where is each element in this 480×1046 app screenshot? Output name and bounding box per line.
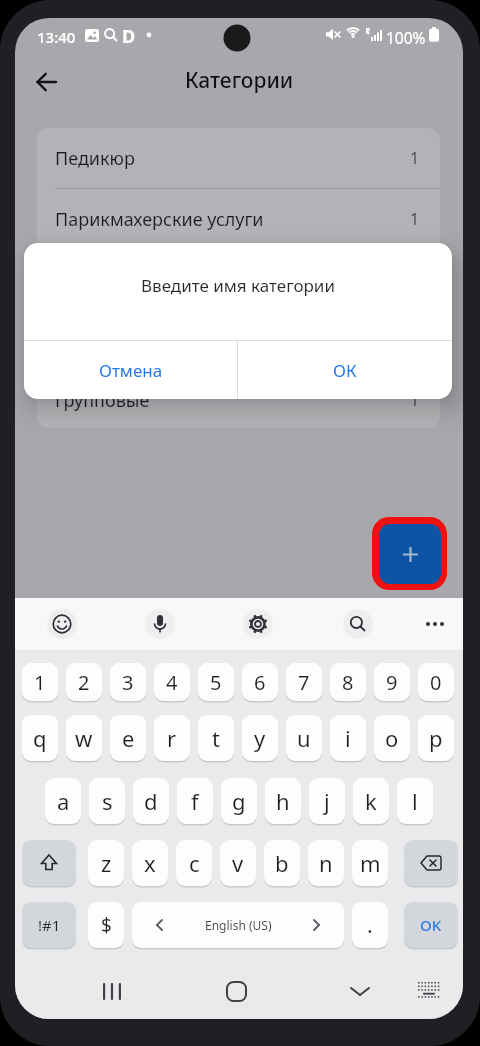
button[interactable]: 9 [374, 663, 410, 701]
button[interactable]: ОК [238, 341, 452, 399]
staticText: OK [420, 915, 442, 935]
staticText: k [365, 786, 377, 816]
button[interactable] [343, 609, 373, 639]
button[interactable]: !#1 [22, 902, 76, 948]
button[interactable]: v [220, 840, 256, 886]
button[interactable]: 5 [198, 663, 234, 701]
button[interactable]: . [352, 902, 388, 948]
button[interactable] [27, 62, 67, 102]
staticText: t [212, 723, 220, 753]
button[interactable]: n [308, 840, 344, 886]
staticText: Введите имя категории [141, 274, 335, 297]
staticText: 7 [298, 669, 310, 696]
staticText: 1 [410, 330, 420, 352]
staticText: v [232, 848, 244, 878]
staticText: $ [101, 912, 112, 938]
button[interactable]: o [374, 715, 410, 761]
staticText: y [254, 723, 266, 753]
staticText: Педикюр [55, 146, 135, 171]
staticText: q [33, 723, 47, 753]
button[interactable]: Отмена [24, 341, 237, 399]
button[interactable]: y [242, 715, 278, 761]
staticText: 0 [430, 669, 442, 696]
button[interactable]: 6 [242, 663, 278, 701]
button[interactable]: s [89, 778, 125, 824]
button[interactable]: Групповые [37, 372, 440, 428]
staticText: w [75, 723, 93, 753]
button[interactable] [47, 609, 77, 639]
staticText: s [102, 786, 113, 816]
button[interactable]: Массаж [37, 311, 440, 371]
button[interactable] [336, 967, 384, 1015]
button[interactable]: t [198, 715, 234, 761]
button[interactable] [379, 524, 441, 584]
staticText: l [412, 786, 418, 816]
staticText: o [385, 723, 399, 753]
staticText: 3 [122, 669, 134, 696]
button[interactable]: k [353, 778, 389, 824]
staticText: d [144, 786, 158, 816]
button[interactable]: OK [404, 902, 458, 948]
staticText: e [122, 723, 135, 753]
button[interactable]: g [221, 778, 257, 824]
button[interactable]: r [154, 715, 190, 761]
button[interactable] [212, 967, 260, 1015]
staticText: 1 [410, 147, 420, 169]
button[interactable] [243, 609, 273, 639]
button[interactable]: English (US) [132, 902, 344, 948]
button[interactable]: u [286, 715, 322, 761]
button[interactable]: f [177, 778, 213, 824]
staticText: 6 [254, 669, 266, 696]
button[interactable]: l [397, 778, 433, 824]
staticText: ОК [333, 359, 357, 382]
button[interactable]: m [352, 840, 388, 886]
button[interactable]: a [45, 778, 81, 824]
button[interactable]: i [330, 715, 366, 761]
button[interactable]: 2 [66, 663, 102, 701]
button[interactable] [145, 609, 175, 639]
staticText: Массаж [55, 329, 123, 354]
button[interactable]: h [265, 778, 301, 824]
button[interactable]: Маникюр [37, 250, 440, 310]
button[interactable] [409, 970, 449, 1010]
button[interactable] [404, 840, 458, 886]
staticText: n [319, 848, 333, 878]
staticText: 100% [386, 27, 426, 48]
button[interactable]: 1 [22, 663, 58, 701]
button[interactable]: e [110, 715, 146, 761]
button[interactable]: b [264, 840, 300, 886]
staticText: m [360, 848, 381, 878]
button[interactable]: j [309, 778, 345, 824]
button[interactable]: w [66, 715, 102, 761]
button[interactable] [22, 840, 76, 886]
button[interactable]: d [133, 778, 169, 824]
button[interactable]: 4 [154, 663, 190, 701]
button[interactable] [88, 967, 136, 1015]
button[interactable]: 8 [330, 663, 366, 701]
button[interactable]: c [176, 840, 212, 886]
staticText: f [191, 786, 199, 816]
button[interactable]: 3 [110, 663, 146, 701]
staticText: c [189, 848, 200, 878]
button[interactable]: 7 [286, 663, 322, 701]
staticText: Парикмахерские услуги [55, 207, 264, 232]
button[interactable]: z [88, 840, 124, 886]
staticText: 8 [342, 669, 354, 696]
staticText: !#1 [38, 915, 61, 935]
button[interactable]: Парикмахерские услуги [37, 189, 440, 249]
staticText: 4 [166, 669, 178, 696]
staticText: 1 [410, 389, 420, 411]
button[interactable]: x [132, 840, 168, 886]
staticText: x [144, 848, 156, 878]
button[interactable]: q [22, 715, 58, 761]
button[interactable]: Педикюр [37, 128, 440, 188]
button[interactable]: $ [88, 902, 124, 948]
staticText: D [122, 24, 136, 49]
staticText: Групповые [55, 388, 150, 413]
button[interactable]: p [418, 715, 454, 761]
button[interactable]: 0 [418, 663, 454, 701]
staticText: a [57, 786, 70, 816]
staticText: r [167, 723, 177, 753]
staticText: u [297, 723, 311, 753]
